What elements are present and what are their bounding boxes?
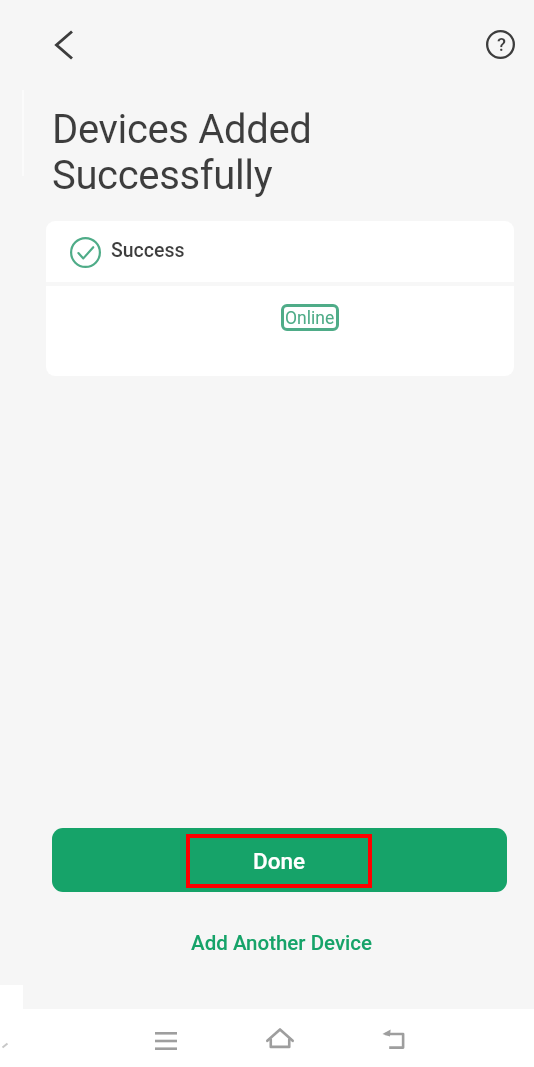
staticText: ? xyxy=(497,34,507,56)
button[interactable]: Help xyxy=(476,20,525,69)
button[interactable]: Back xyxy=(39,20,88,69)
staticText: Online xyxy=(285,308,335,329)
button[interactable]: Online xyxy=(281,304,339,331)
staticText: Done xyxy=(253,848,306,874)
button[interactable]: Recent apps xyxy=(139,1014,193,1067)
staticText: Devices Added Successfully xyxy=(52,106,312,199)
button[interactable]: Home xyxy=(253,1012,307,1066)
button[interactable]: Done xyxy=(52,828,507,892)
button[interactable]: Back xyxy=(367,1012,421,1066)
staticText: Add Another Device xyxy=(191,931,373,955)
button[interactable]: Add Another Device xyxy=(170,920,391,966)
button[interactable]: Success xyxy=(46,221,514,282)
staticText: Success xyxy=(111,239,185,262)
